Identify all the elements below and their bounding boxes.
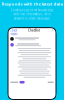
button[interactable]: ‹ [10, 28, 18, 33]
staticText: ChatBot [28, 29, 40, 32]
button[interactable]: Toggle [19, 81, 25, 83]
staticText: ‹ [10, 28, 11, 33]
staticText: Back [12, 29, 17, 32]
staticText: Responds with the latest data [1, 1, 62, 7]
button[interactable]: Profile [50, 29, 54, 32]
staticText: Combines general knowledge with live inf… [10, 8, 53, 20]
